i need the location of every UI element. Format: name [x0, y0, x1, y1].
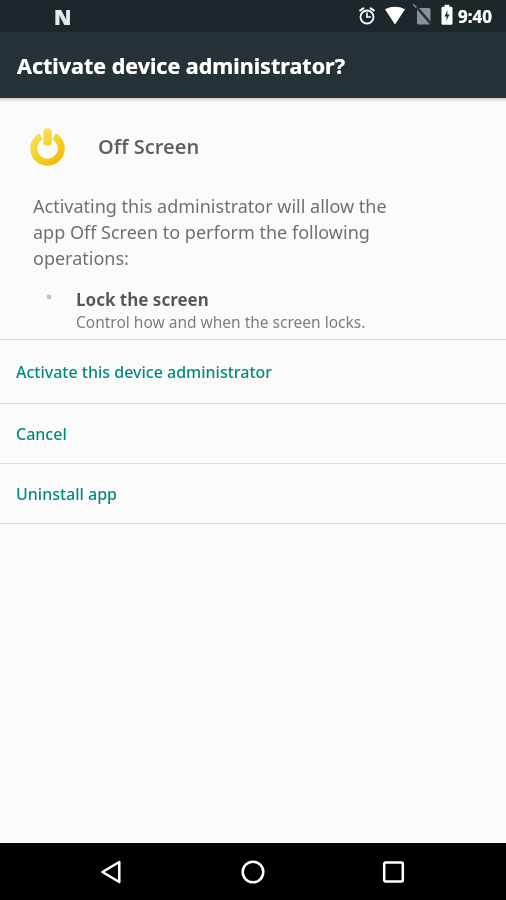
staticText: Uninstall app — [16, 483, 118, 505]
button[interactable]: Cancel — [0, 404, 506, 463]
staticText: N — [54, 3, 72, 32]
staticText: Off Screen — [98, 133, 200, 160]
button[interactable]: Uninstall app — [0, 464, 506, 523]
button[interactable] — [183, 843, 323, 900]
staticText: Cancel — [16, 423, 67, 445]
button[interactable] — [43, 843, 183, 900]
staticText: Activating this administrator will allow… — [33, 194, 387, 270]
staticText: Activate device administrator? — [17, 51, 345, 80]
staticText: Lock the screen — [76, 288, 209, 311]
button[interactable]: Activate this device administrator — [0, 340, 506, 403]
staticText: Control how and when the screen locks. — [76, 311, 366, 332]
staticText: Activate this device administrator — [16, 361, 273, 383]
staticText: 9:40 — [458, 5, 492, 28]
button[interactable] — [323, 843, 463, 900]
